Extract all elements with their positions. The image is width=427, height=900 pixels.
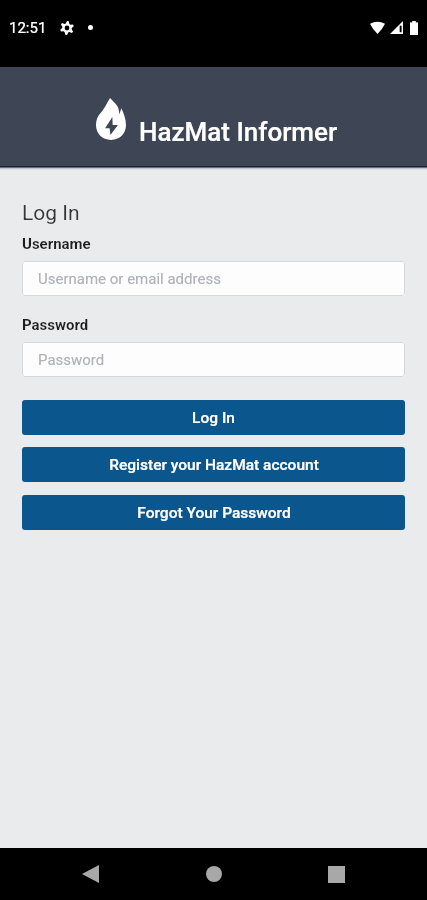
staticText: Password	[38, 351, 105, 369]
staticText: Username	[22, 235, 91, 253]
staticText: Username or email address	[38, 270, 221, 288]
button[interactable]: Log In	[22, 400, 405, 435]
button[interactable]: Register your HazMat account	[22, 447, 405, 482]
button[interactable]: Username or email address	[22, 261, 405, 296]
staticText: Log In	[192, 409, 235, 427]
button[interactable]: Home	[152, 848, 275, 900]
staticText: Password	[22, 316, 89, 334]
staticText: Forgot Your Password	[137, 504, 291, 522]
button[interactable]: Forgot Your Password	[22, 495, 405, 530]
button[interactable]: Password	[22, 342, 405, 377]
button[interactable]: Recent apps	[275, 848, 398, 900]
staticText: Log In	[22, 201, 80, 226]
staticText: 12:51	[9, 19, 47, 37]
staticText: Register your HazMat account	[109, 456, 319, 474]
staticText: HazMat Informer	[139, 117, 338, 147]
button[interactable]: Back	[29, 848, 152, 900]
